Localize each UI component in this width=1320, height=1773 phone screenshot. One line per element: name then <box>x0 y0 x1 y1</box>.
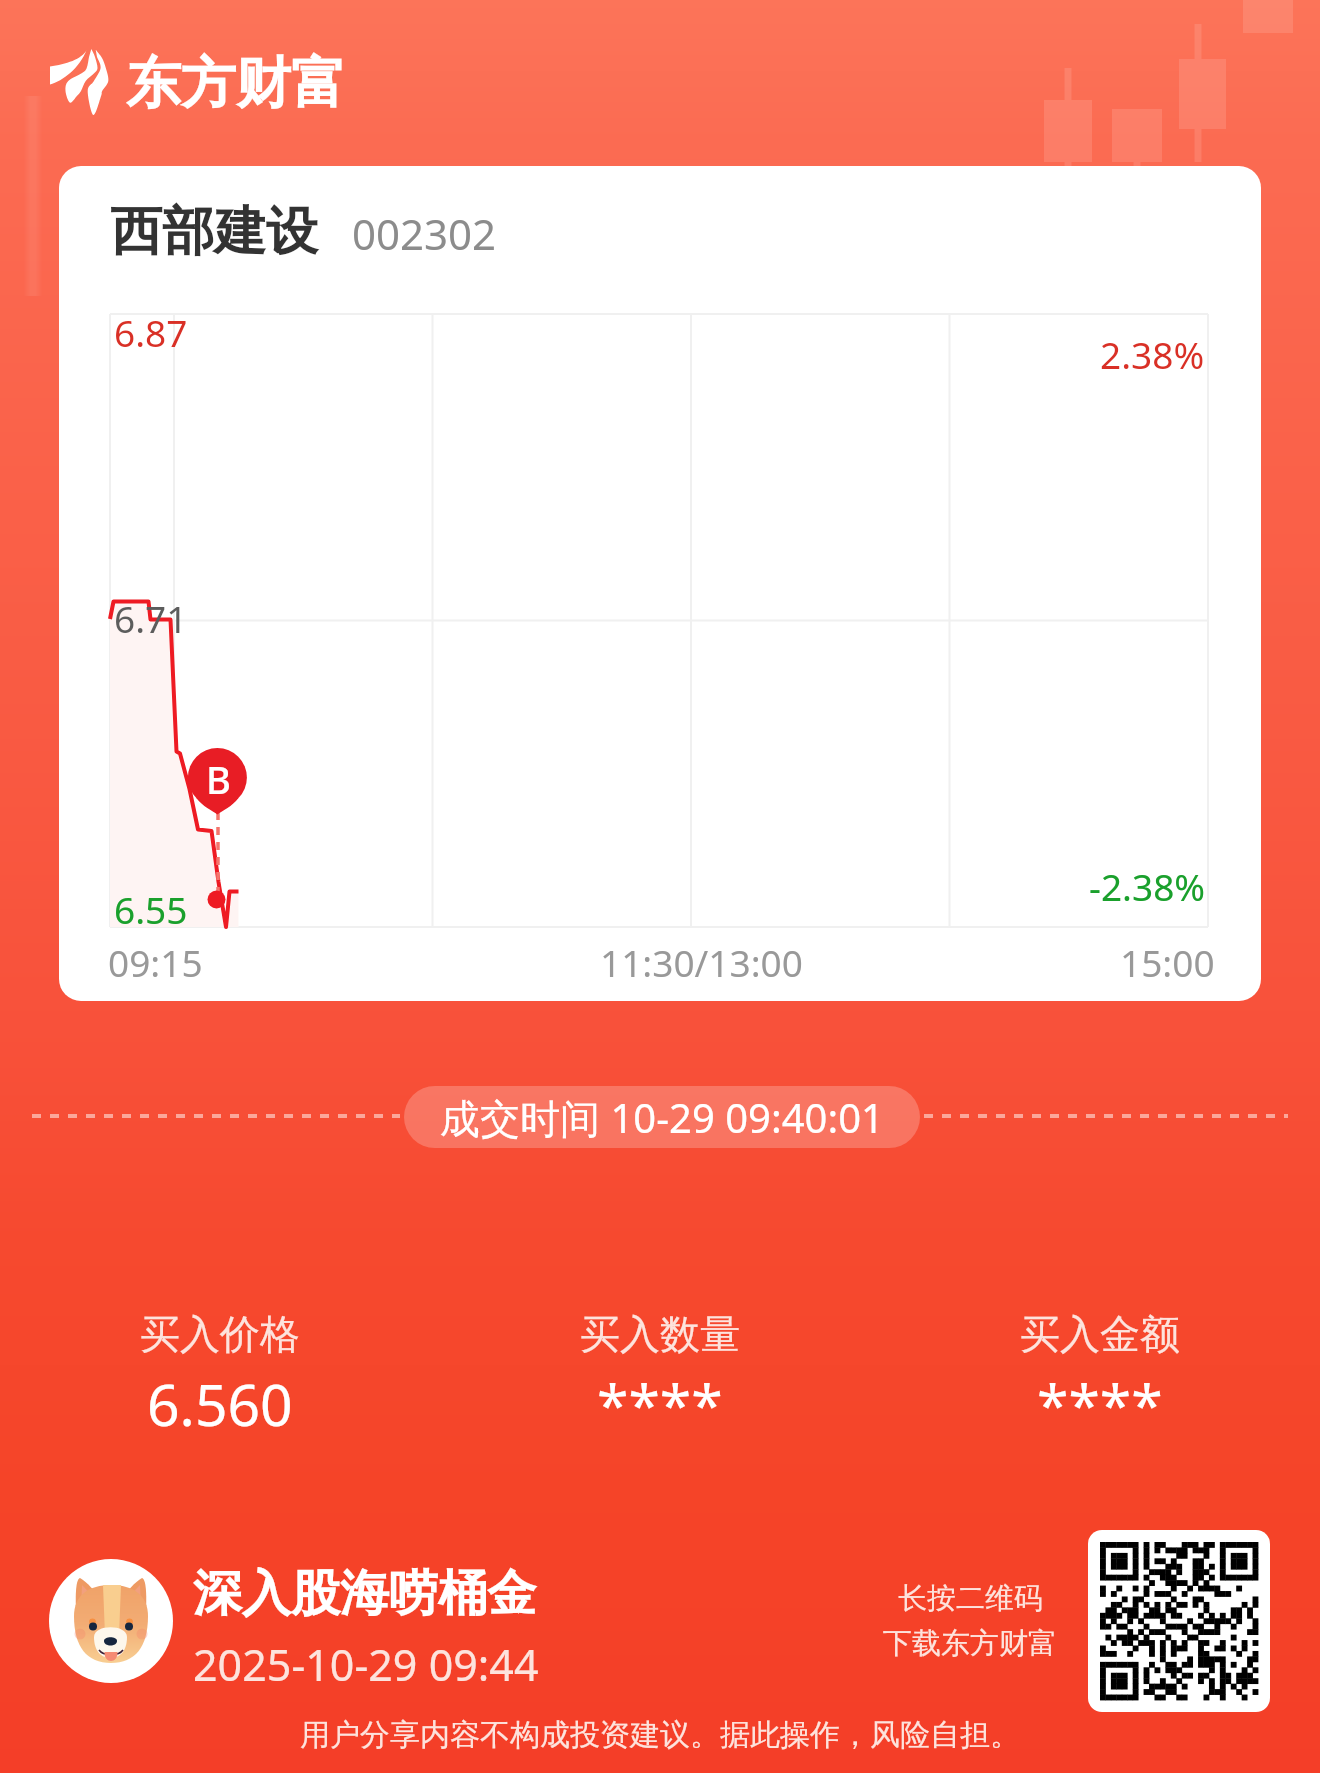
staticText: 东方财富 <box>126 49 346 118</box>
staticText: 长按二维码 <box>898 1580 1043 1617</box>
staticText: 西部建设 <box>110 199 318 265</box>
button[interactable]: 成交时间 10-29 09:40:01 <box>404 1086 920 1148</box>
button[interactable]: QR code: download East Money app <box>1088 1530 1270 1712</box>
staticText: 下载东方财富 <box>883 1625 1057 1662</box>
button[interactable]: 买入金额 <box>880 1309 1320 1443</box>
staticText: 6.87 <box>114 307 188 357</box>
staticText: 成交时间 10-29 09:40:01 <box>440 1090 884 1145</box>
staticText: **** <box>1037 1365 1163 1443</box>
staticText: 2025-10-29 09:44 <box>193 1635 539 1694</box>
staticText: 002302 <box>352 205 497 262</box>
staticText: **** <box>597 1365 723 1443</box>
staticText: -2.38% <box>1089 861 1206 911</box>
button[interactable]: 深入股海唠桶金 <box>193 1563 539 1694</box>
staticText: 15:00 <box>1120 937 1215 987</box>
staticText: 11:30/13:00 <box>600 937 803 987</box>
button[interactable]: 买入数量 <box>440 1309 880 1443</box>
staticText: 用户分享内容不构成投资建议。据此操作，风险自担。 <box>300 1716 1020 1754</box>
staticText: 6.55 <box>114 884 188 934</box>
staticText: 深入股海唠桶金 <box>193 1563 536 1625</box>
button[interactable]: User avatar <box>49 1559 173 1683</box>
staticText: 买入金额 <box>1020 1309 1180 1359</box>
staticText: 2.38% <box>1100 329 1205 379</box>
staticText: B <box>206 753 231 805</box>
button[interactable]: 买入价格 <box>0 1309 440 1443</box>
staticText: 6.560 <box>147 1365 293 1443</box>
staticText: 买入价格 <box>140 1309 300 1359</box>
staticText: 买入数量 <box>580 1309 740 1359</box>
staticText: 6.71 <box>114 593 188 643</box>
staticText: 09:15 <box>108 937 203 987</box>
button[interactable]: 西部建设 <box>59 166 1261 1001</box>
button[interactable]: 东方财富 <box>46 38 334 124</box>
